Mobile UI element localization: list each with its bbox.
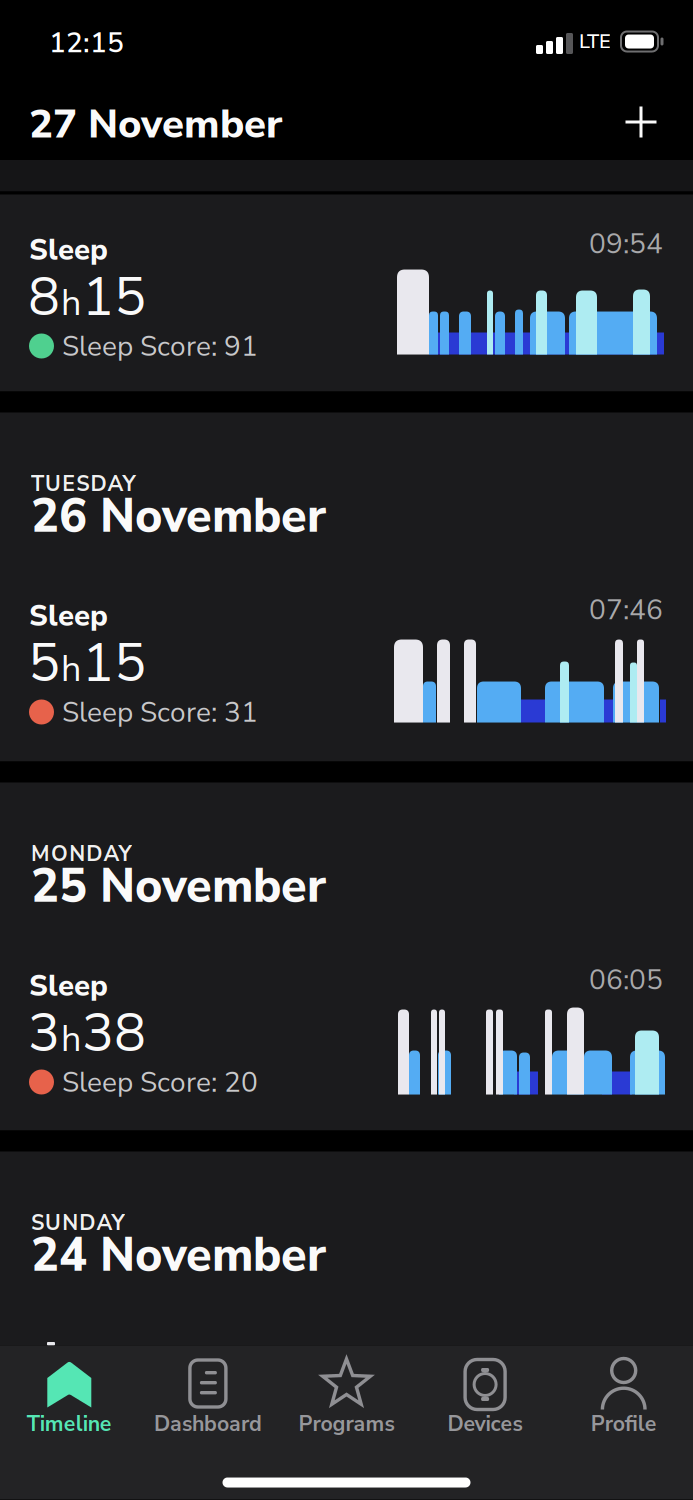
staticText: 15 [82,627,146,700]
staticText: Sleep Score: 20 [62,1063,258,1102]
staticText: Sleep [29,596,108,636]
button[interactable]: Devices [416,1355,554,1455]
staticText: SUNDAY [31,1208,124,1238]
staticText: LTE [579,28,611,55]
button[interactable]: SUNDAY [0,1151,693,1345]
button[interactable]: TUESDAY [0,412,693,761]
button[interactable]: Sleep [0,194,693,391]
staticText: 25 November [31,854,326,918]
button[interactable]: MONDAY [0,782,693,1130]
staticText: h [61,279,81,328]
button[interactable]: Add [617,98,665,146]
staticText: TUESDAY [31,469,136,499]
staticText: 3 [28,997,60,1070]
staticText: Devices [448,1409,523,1439]
button[interactable]: Programs [277,1355,416,1455]
staticText: h [61,1015,81,1064]
staticText: 06:05 [589,961,663,999]
button[interactable]: Timeline [0,1355,139,1455]
staticText: h [61,645,81,694]
button[interactable]: Dashboard [139,1355,277,1455]
staticText: 12:15 [49,24,124,62]
staticText: 26 November [31,484,326,548]
staticText: 07:46 [589,591,663,629]
staticText: 24 November [31,1223,326,1287]
staticText: 38 [82,997,146,1070]
staticText: 15 [82,261,146,334]
staticText: Programs [298,1409,394,1439]
staticText: 27 November [29,97,282,152]
staticText: Sleep Score: 31 [62,693,258,732]
staticText: Sleep Score: 91 [62,327,258,366]
staticText: Dashboard [154,1409,262,1439]
staticText: Profile [591,1409,657,1439]
button[interactable]: Profile [554,1355,693,1455]
staticText: Sleep [29,230,108,270]
staticText: 8 [28,261,60,334]
staticText: Timeline [27,1409,112,1439]
staticText: 09:54 [589,225,663,263]
staticText: Sleep [29,966,108,1006]
staticText: MONDAY [31,839,131,869]
staticText: 5 [28,627,60,700]
